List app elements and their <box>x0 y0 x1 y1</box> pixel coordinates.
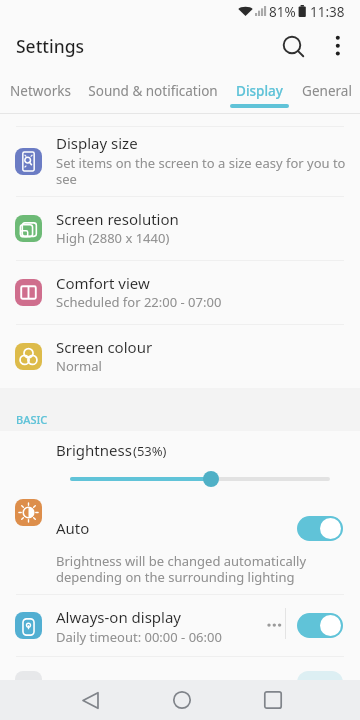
button[interactable]: Display <box>226 70 293 114</box>
staticText: 81% <box>269 3 296 21</box>
staticText: Comfort view <box>56 273 150 293</box>
staticText: Networks <box>10 82 71 100</box>
button[interactable]: More <box>262 614 286 636</box>
staticText: Brightness <box>56 440 132 460</box>
staticText: Sound & notification <box>88 82 218 100</box>
button[interactable]: Screen colour <box>0 325 360 388</box>
staticText: (53%) <box>133 442 167 460</box>
staticText: Set items on the screen to a size easy f… <box>56 154 346 188</box>
button[interactable]: Networks <box>1 70 79 114</box>
button[interactable]: Brightness <box>0 431 360 493</box>
staticText: Scheduled for 22:00 - 07:00 <box>56 293 222 311</box>
staticText: Brightness will be changed automatically… <box>56 552 307 586</box>
button[interactable]: More options <box>322 26 354 70</box>
button[interactable]: Display size <box>0 127 360 196</box>
button[interactable]: Search <box>272 26 312 70</box>
staticText: General <box>302 82 352 100</box>
staticText: Display size <box>56 133 138 153</box>
staticText: Always-on display <box>56 607 182 627</box>
staticText: 11:38 <box>310 3 345 21</box>
staticText: Auto <box>56 518 90 538</box>
button[interactable]: Screen resolution <box>0 197 360 260</box>
staticText: Screen resolution <box>56 209 179 229</box>
button[interactable]: Always-on display <box>0 595 360 656</box>
staticText: Daily timeout: 00:00 - 06:00 <box>56 628 222 646</box>
button[interactable]: Toggle <box>297 613 343 638</box>
button[interactable]: Auto <box>0 493 360 594</box>
button[interactable]: General <box>293 70 360 114</box>
staticText: BASIC <box>16 412 48 427</box>
staticText: High (2880 x 1440) <box>56 229 170 247</box>
button[interactable]: Comfort view <box>0 261 360 324</box>
button[interactable]: Home <box>161 680 202 720</box>
button[interactable]: Sound & notification <box>79 70 226 114</box>
button[interactable]: Back <box>70 680 111 720</box>
button[interactable]: Recents <box>252 680 293 720</box>
staticText: Normal <box>56 357 102 375</box>
staticText: Screen colour <box>56 337 153 357</box>
staticText: Settings <box>16 34 85 58</box>
staticText: Display <box>236 82 283 100</box>
button[interactable]: Toggle <box>297 516 343 541</box>
